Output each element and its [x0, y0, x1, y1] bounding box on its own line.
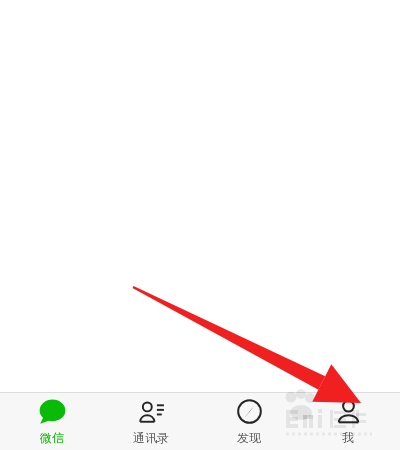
staticText: 通讯录	[133, 430, 169, 445]
button[interactable]: 发现	[203, 392, 295, 450]
staticText: 微信	[40, 430, 64, 445]
staticText: 我	[342, 430, 354, 445]
button[interactable]: 我	[302, 392, 394, 450]
button[interactable]: 通讯录	[105, 392, 197, 450]
button[interactable]: 微信	[6, 392, 98, 450]
staticText: 发现	[237, 430, 261, 445]
